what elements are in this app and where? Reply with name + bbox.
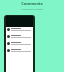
- staticText: Discussion thread: [22, 7, 43, 10]
- button[interactable]: [6, 48, 33, 55]
- button[interactable]: [6, 27, 33, 34]
- button[interactable]: [6, 34, 33, 41]
- staticText: Comments: [21, 1, 43, 6]
- button[interactable]: [6, 41, 33, 48]
